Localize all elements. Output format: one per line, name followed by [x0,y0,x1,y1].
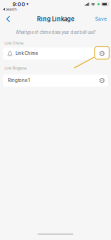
staticText: Link Chime [4,41,23,45]
staticText: Ring Linkage [37,15,74,23]
button[interactable]: Back [0,13,15,25]
button[interactable]: Link Chime [3,47,108,59]
staticText: Search [6,7,17,11]
button[interactable]: Save [91,13,111,25]
staticText: What type of chime does your doorbell us… [15,30,95,35]
staticText: Link Chime [15,51,37,56]
staticText: 9:00 [12,1,25,7]
staticText: Link Ringtone [4,66,26,70]
staticText: Save [95,16,107,22]
button[interactable]: Ringtone 1 [3,74,108,86]
staticText: Ringtone 1 [8,78,30,83]
